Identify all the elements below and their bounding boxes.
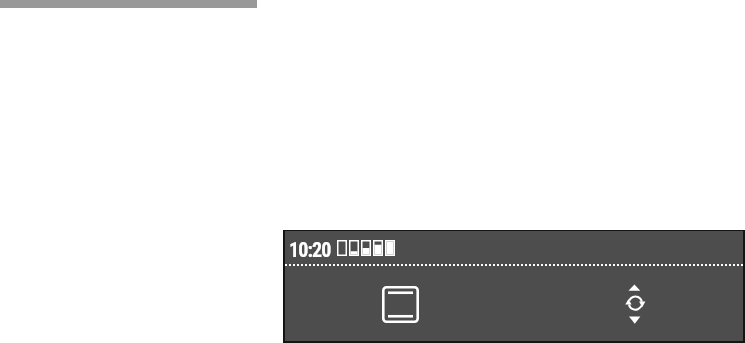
staticText: 10:20 — [289, 238, 331, 261]
button[interactable]: Swap panes — [624, 283, 648, 325]
button[interactable]: Split screen layout — [382, 286, 419, 323]
